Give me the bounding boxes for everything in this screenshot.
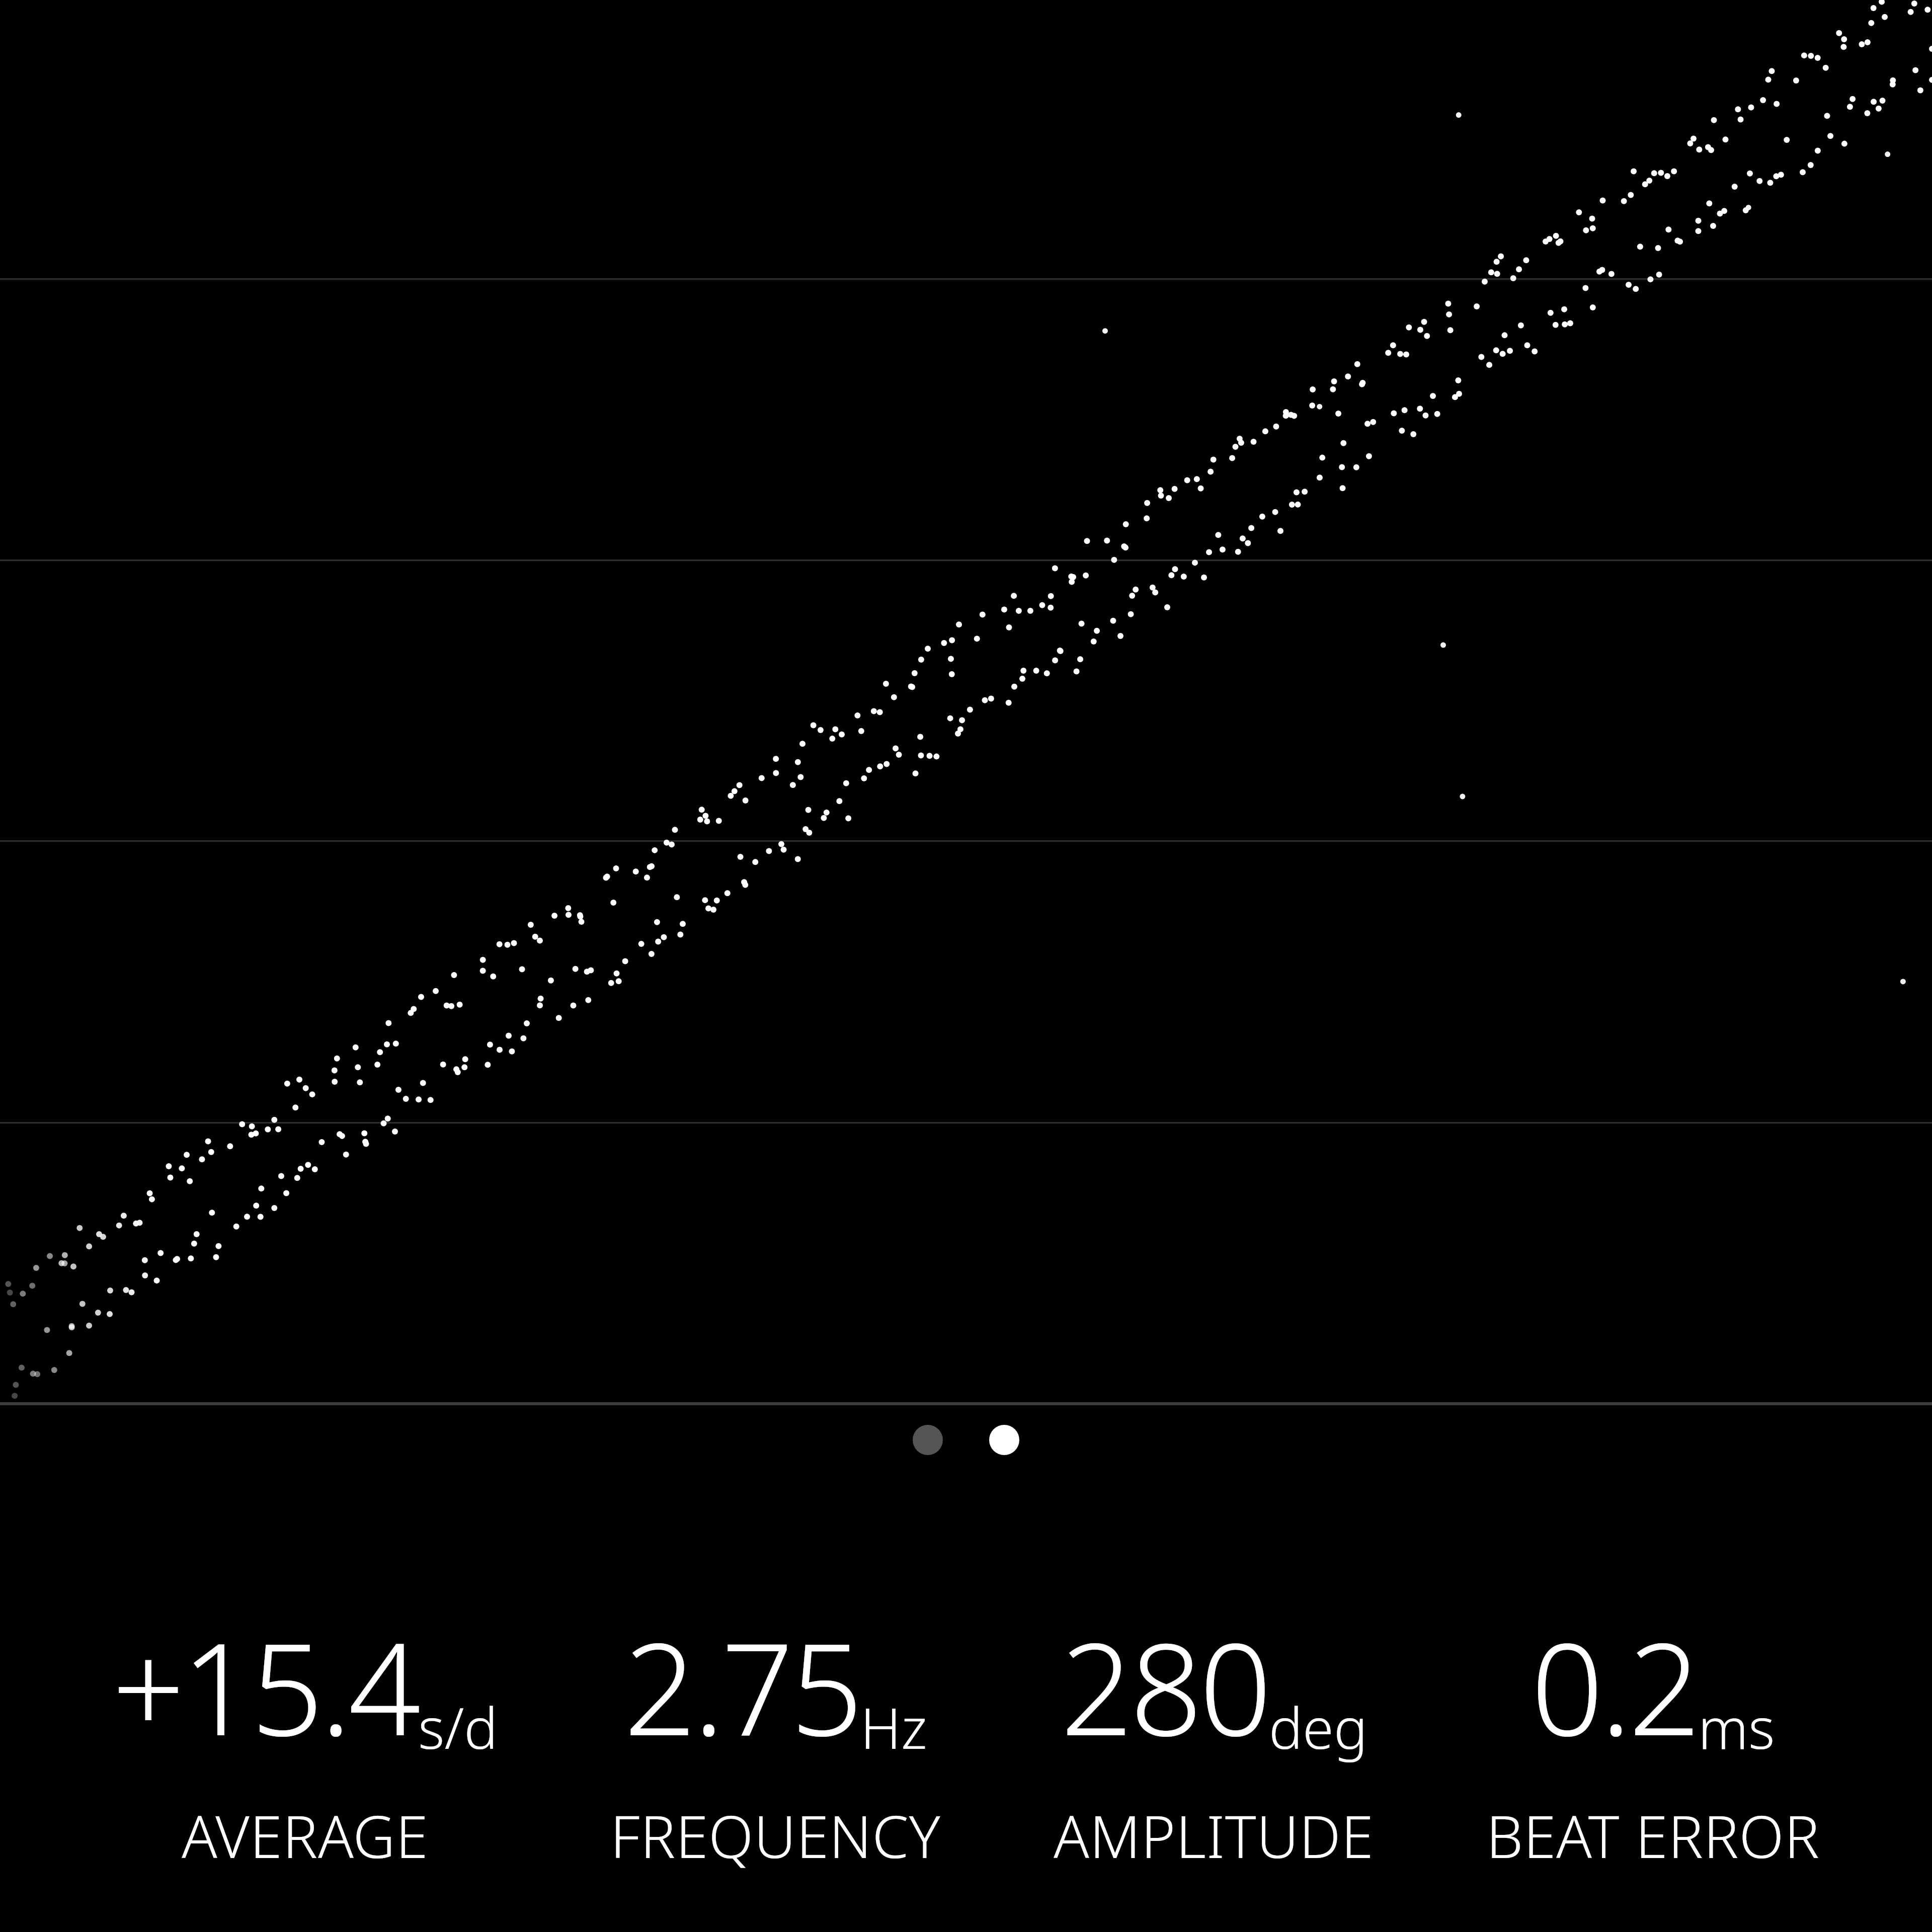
- staticText: +15.4: [112, 1600, 418, 1773]
- staticText: s/d: [418, 1688, 498, 1765]
- staticText: ms: [1698, 1688, 1775, 1765]
- staticText: BEAT ERROR: [1486, 1796, 1820, 1875]
- staticText: AVERAGE: [182, 1796, 429, 1875]
- button[interactable]: Beat trace graph: [0, 0, 1932, 1402]
- staticText: 280: [1061, 1600, 1269, 1773]
- button[interactable]: Page 2, selected: [989, 1425, 1019, 1455]
- button[interactable]: +15.4: [112, 1600, 498, 1875]
- staticText: 2.75: [624, 1600, 860, 1773]
- staticText: Hz: [860, 1688, 927, 1765]
- staticText: deg: [1269, 1688, 1367, 1765]
- button[interactable]: Page 1: [913, 1425, 943, 1455]
- button[interactable]: 2.75: [610, 1600, 941, 1875]
- button[interactable]: 280: [1054, 1600, 1374, 1875]
- staticText: FREQUENCY: [610, 1796, 941, 1875]
- staticText: AMPLITUDE: [1054, 1796, 1374, 1875]
- staticText: 0.2: [1531, 1600, 1698, 1773]
- button[interactable]: 0.2: [1486, 1600, 1820, 1875]
